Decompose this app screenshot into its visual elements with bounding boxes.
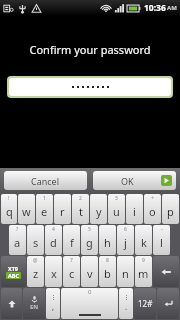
button[interactable]: Shift	[1, 288, 22, 319]
button[interactable]: y	[90, 194, 107, 224]
staticText: ?	[16, 226, 19, 233]
staticText: s	[33, 235, 39, 250]
button[interactable]: x	[45, 256, 62, 287]
staticText: o	[149, 204, 156, 219]
button[interactable]	[9, 78, 171, 96]
staticText: 4	[52, 226, 55, 233]
staticText: x	[51, 266, 57, 281]
staticText: ,	[52, 301, 55, 312]
staticText: 2	[79, 195, 82, 202]
button[interactable]: n	[117, 256, 134, 287]
staticText: OK	[121, 175, 134, 187]
button[interactable]: v	[81, 256, 98, 287]
button[interactable]: Cancel	[4, 171, 87, 190]
staticText: u	[113, 204, 120, 219]
staticText: EN	[30, 303, 39, 311]
button[interactable]: f	[63, 225, 80, 255]
staticText: d	[50, 235, 57, 250]
button[interactable]: 7	[63, 256, 80, 287]
staticText: 0	[88, 288, 92, 296]
button[interactable]: Enter	[157, 288, 179, 319]
staticText: n	[122, 266, 129, 281]
staticText: z	[33, 266, 39, 281]
button[interactable]: OK	[93, 171, 176, 190]
button[interactable]: Space	[61, 288, 118, 319]
staticText: y	[96, 204, 102, 219]
button[interactable]: ?	[9, 225, 26, 255]
button[interactable]: w	[18, 194, 35, 224]
button[interactable]: p	[162, 194, 179, 224]
staticText: 9	[142, 257, 145, 264]
button[interactable]: 3	[108, 194, 125, 224]
staticText: @	[33, 257, 38, 264]
staticText: 6	[124, 226, 127, 233]
button[interactable]: XT9	[1, 256, 26, 287]
button[interactable]: .	[119, 288, 133, 319]
staticText: v	[87, 266, 93, 281]
staticText: q	[6, 204, 13, 219]
staticText: ABC	[8, 272, 19, 279]
button[interactable]: 8	[99, 256, 116, 287]
staticText: h	[104, 235, 111, 250]
staticText: g	[86, 235, 93, 250]
button[interactable]: 6	[117, 225, 134, 255]
staticText: w	[22, 204, 31, 219]
button[interactable]: 5	[81, 225, 98, 255]
button[interactable]: Backspace	[153, 256, 179, 287]
button[interactable]: s	[27, 225, 44, 255]
staticText: 8	[106, 257, 109, 264]
button[interactable]: r	[54, 194, 71, 224]
staticText: e	[41, 204, 48, 219]
button[interactable]: 4	[45, 225, 62, 255]
staticText: 3	[115, 195, 118, 202]
button[interactable]: h	[99, 225, 116, 255]
staticText: !	[8, 195, 10, 202]
button[interactable]: i	[126, 194, 143, 224]
staticText: l	[160, 235, 163, 250]
button[interactable]: 12#	[134, 288, 156, 319]
button[interactable]: -	[153, 225, 170, 255]
staticText: m	[138, 266, 149, 281]
staticText: r	[60, 204, 65, 219]
staticText: Cancel	[31, 175, 60, 187]
staticText: XT9	[8, 265, 19, 272]
button[interactable]: 1	[36, 194, 53, 224]
staticText: -	[161, 226, 163, 233]
button[interactable]: 9	[135, 256, 152, 287]
staticText: c	[69, 266, 75, 281]
button[interactable]: @	[27, 256, 44, 287]
button[interactable]: !	[1, 194, 17, 224]
staticText: Confirm your password	[29, 42, 151, 57]
staticText: b	[104, 266, 111, 281]
staticText: i	[133, 204, 136, 219]
staticText: AM	[167, 4, 177, 12]
button[interactable]: 2	[72, 194, 89, 224]
button[interactable]: k	[135, 225, 152, 255]
staticText: f	[70, 235, 74, 250]
button[interactable]: ,	[46, 288, 60, 319]
staticText: t	[79, 204, 83, 219]
staticText: 5	[88, 226, 91, 233]
staticText: 7	[70, 257, 73, 264]
staticText: a	[14, 235, 21, 250]
staticText: +	[151, 195, 154, 202]
staticText: 10:36	[144, 2, 166, 14]
staticText: 1	[43, 195, 46, 202]
staticText: 12#	[138, 298, 153, 309]
staticText: k	[141, 235, 147, 250]
button[interactable]: +	[144, 194, 161, 224]
staticText: p	[167, 204, 174, 219]
button[interactable]: Voice input, English	[23, 288, 45, 319]
staticText: .	[125, 301, 128, 312]
staticText: j	[124, 235, 127, 250]
